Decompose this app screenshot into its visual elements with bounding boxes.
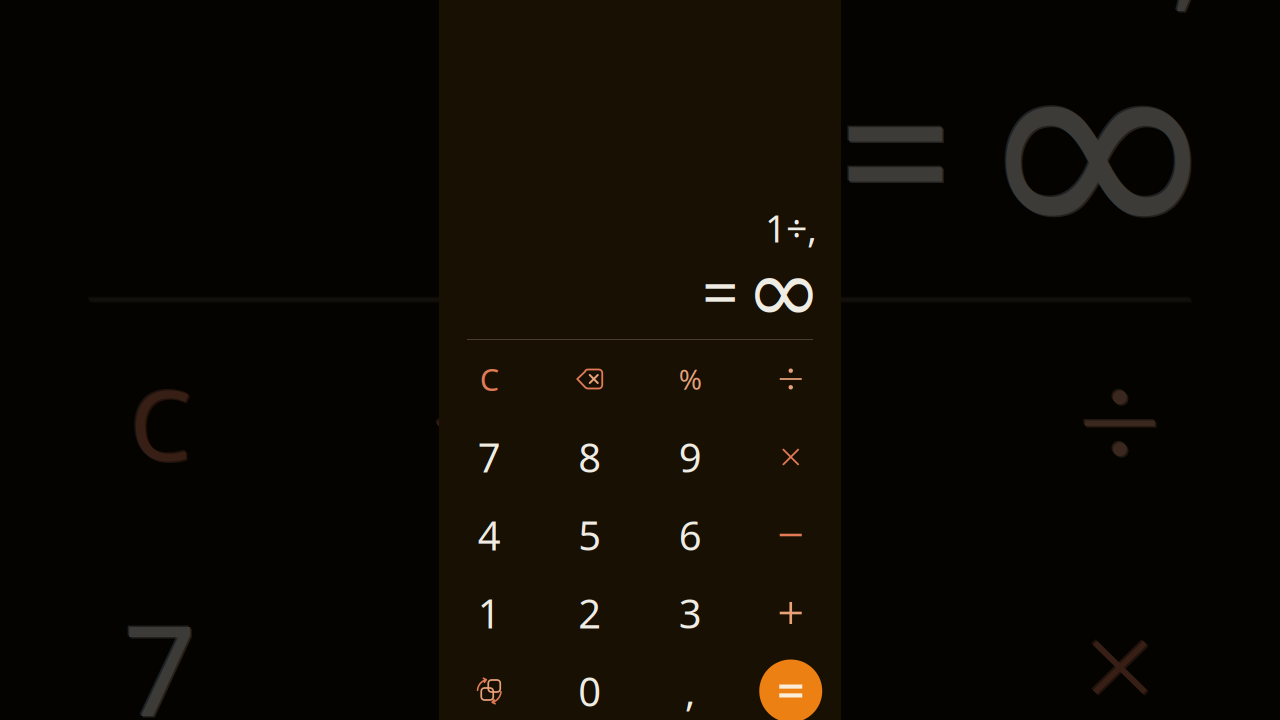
staticText: 9 [679, 430, 702, 483]
button[interactable]: C [439, 340, 539, 418]
button[interactable]: 1 [439, 574, 539, 652]
staticText: 6 [679, 508, 702, 561]
button[interactable]: 7 [439, 418, 539, 496]
button[interactable]: Divide [740, 340, 841, 418]
button[interactable]: Convert units [439, 652, 539, 720]
button[interactable]: 3 [640, 574, 740, 652]
button[interactable]: 6 [640, 496, 740, 574]
staticText: 1÷, [765, 203, 817, 253]
button[interactable]: , [640, 652, 740, 720]
button[interactable]: 0 [539, 652, 640, 720]
button[interactable]: % [640, 340, 740, 418]
button[interactable]: 2 [539, 574, 640, 652]
button[interactable]: 8 [539, 418, 640, 496]
button[interactable]: Multiply [740, 418, 841, 496]
staticText: % [679, 360, 702, 398]
staticText: 4 [478, 508, 501, 561]
staticText: 0 [578, 664, 601, 717]
button[interactable]: Equals [740, 652, 841, 720]
button[interactable]: Plus [740, 574, 841, 652]
button[interactable]: 4 [439, 496, 539, 574]
button[interactable]: Backspace [539, 340, 640, 418]
button[interactable]: 9 [640, 418, 740, 496]
staticText: 8 [578, 430, 601, 483]
staticText: 2 [578, 586, 601, 639]
staticText: 7 [478, 430, 501, 483]
staticText: 3 [679, 586, 702, 639]
staticText: ∞ [745, 238, 823, 344]
staticText: C [480, 359, 499, 399]
button[interactable]: Minus [740, 496, 841, 574]
button[interactable]: 5 [539, 496, 640, 574]
staticText: , [685, 664, 696, 717]
staticText: 5 [578, 508, 601, 561]
staticText: 1 [478, 586, 501, 639]
staticText: = [702, 248, 739, 333]
